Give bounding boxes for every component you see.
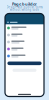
staticText: Page builder — [12, 1, 37, 7]
staticText: without writing code — [9, 8, 39, 11]
button[interactable] — [5, 69, 44, 72]
button[interactable] — [5, 24, 44, 31]
button[interactable] — [5, 61, 44, 65]
button[interactable] — [5, 31, 44, 38]
button[interactable] — [5, 38, 44, 45]
button[interactable] — [5, 52, 44, 59]
staticText: Design and publish forms — [6, 5, 42, 9]
button[interactable] — [5, 45, 44, 52]
